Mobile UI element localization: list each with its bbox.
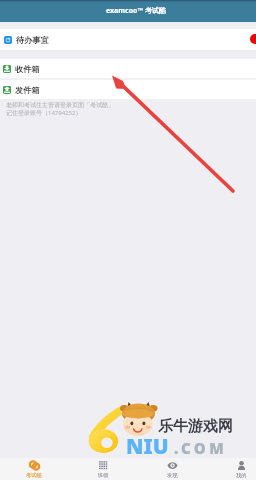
staticText: 待办事宜 xyxy=(16,35,49,45)
staticText: 乐牛游戏网 xyxy=(158,417,233,436)
button[interactable]: 待办事宜 xyxy=(0,29,256,50)
staticText: .COM xyxy=(174,438,228,458)
staticText: 发现 xyxy=(167,472,178,479)
staticText: 考试酷 xyxy=(26,472,42,479)
button[interactable]: 班级 xyxy=(87,458,119,480)
button[interactable]: 发现 xyxy=(156,458,188,480)
staticText: examcoo™ 考试酷 xyxy=(106,6,166,16)
button[interactable]: 考试酷 xyxy=(18,458,50,480)
staticText: NIU xyxy=(126,432,169,461)
button[interactable]: 发件箱 xyxy=(0,80,256,99)
staticText: 班级 xyxy=(98,472,109,479)
staticText: 我的 xyxy=(236,472,247,479)
staticText: 记住登录账号（14794252） xyxy=(6,109,82,117)
button[interactable]: 收件箱 xyxy=(0,59,256,78)
button[interactable]: 我的 xyxy=(225,458,256,480)
staticText: 收件箱 xyxy=(15,64,40,74)
staticText: 老师和考试生主管请登录页面「考试酷」 xyxy=(6,101,114,109)
staticText: 发件箱 xyxy=(15,85,40,95)
